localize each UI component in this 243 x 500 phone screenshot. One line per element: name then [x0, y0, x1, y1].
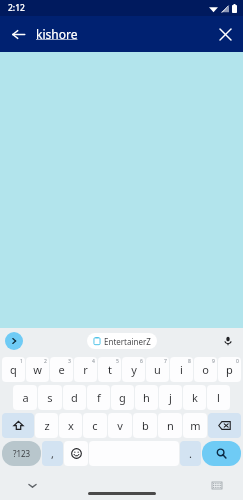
- button[interactable]: v: [108, 413, 132, 438]
- button[interactable]: Shift: [2, 413, 34, 438]
- staticText: x: [68, 418, 74, 433]
- button[interactable]: kishore: [36, 26, 207, 42]
- button[interactable]: d: [63, 385, 86, 410]
- staticText: q: [10, 362, 17, 377]
- button[interactable]: Change keyboard: [209, 477, 225, 493]
- staticText: i: [180, 362, 183, 377]
- staticText: 3: [68, 358, 71, 365]
- button[interactable]: j: [159, 385, 182, 410]
- staticText: EntertainerZ: [104, 336, 151, 347]
- staticText: kishore: [36, 26, 78, 42]
- staticText: d: [71, 390, 78, 405]
- button[interactable]: r: [74, 357, 97, 382]
- button[interactable]: y: [122, 357, 145, 382]
- staticText: 7: [164, 358, 167, 365]
- button[interactable]: f: [87, 385, 110, 410]
- button[interactable]: Clear: [207, 16, 243, 52]
- button[interactable]: m: [183, 413, 207, 438]
- button[interactable]: g: [111, 385, 134, 410]
- button[interactable]: i: [170, 357, 193, 382]
- staticText: w: [33, 362, 42, 377]
- button[interactable]: k: [183, 385, 206, 410]
- button[interactable]: .: [180, 441, 201, 466]
- button[interactable]: a: [13, 385, 37, 410]
- button[interactable]: Hide keyboard: [24, 477, 40, 493]
- staticText: z: [44, 418, 50, 433]
- staticText: 4: [92, 358, 95, 365]
- staticText: k: [192, 390, 198, 405]
- staticText: v: [117, 418, 123, 433]
- staticText: 9: [212, 358, 215, 365]
- button[interactable]: ,: [42, 441, 63, 466]
- button[interactable]: h: [135, 385, 158, 410]
- staticText: u: [154, 362, 161, 377]
- button[interactable]: b: [133, 413, 157, 438]
- staticText: g: [119, 390, 126, 405]
- button[interactable]: q: [2, 357, 25, 382]
- staticText: o: [202, 362, 209, 377]
- staticText: n: [167, 418, 174, 433]
- staticText: b: [142, 418, 149, 433]
- button[interactable]: u: [146, 357, 169, 382]
- staticText: 2: [44, 358, 47, 365]
- button[interactable]: Search: [202, 441, 241, 466]
- staticText: p: [226, 362, 233, 377]
- button[interactable]: Emoji: [64, 441, 88, 466]
- button[interactable]: Backspace: [208, 413, 241, 438]
- staticText: m: [190, 418, 201, 433]
- button[interactable]: ?123: [2, 441, 41, 466]
- staticText: 5: [116, 358, 119, 365]
- staticText: .: [189, 446, 192, 461]
- staticText: y: [131, 362, 137, 377]
- button[interactable]: EntertainerZ: [87, 333, 157, 349]
- button[interactable]: c: [83, 413, 107, 438]
- button[interactable]: w: [26, 357, 49, 382]
- button[interactable]: z: [35, 413, 58, 438]
- button[interactable]: p: [218, 357, 241, 382]
- staticText: l: [217, 390, 220, 405]
- staticText: ?123: [13, 448, 31, 459]
- button[interactable]: Back: [0, 16, 36, 52]
- button[interactable]: t: [98, 357, 121, 382]
- staticText: 6: [140, 358, 143, 365]
- staticText: 0: [236, 358, 239, 365]
- staticText: ,: [51, 446, 54, 461]
- staticText: 8: [188, 358, 191, 365]
- staticText: 1: [20, 358, 23, 365]
- button[interactable]: l: [207, 385, 230, 410]
- button[interactable]: More suggestions: [5, 332, 23, 350]
- staticText: a: [22, 390, 29, 405]
- staticText: j: [169, 390, 172, 405]
- staticText: e: [58, 362, 65, 377]
- staticText: c: [92, 418, 98, 433]
- staticText: f: [97, 390, 101, 405]
- button[interactable]: Voice input: [219, 332, 237, 350]
- staticText: s: [47, 390, 53, 405]
- button[interactable]: e: [50, 357, 73, 382]
- button[interactable]: o: [194, 357, 217, 382]
- staticText: r: [83, 362, 88, 377]
- button[interactable]: x: [59, 413, 82, 438]
- staticText: t: [108, 362, 112, 377]
- button[interactable]: s: [38, 385, 62, 410]
- button[interactable]: n: [158, 413, 182, 438]
- staticText: 2:12: [8, 2, 25, 14]
- staticText: h: [143, 390, 150, 405]
